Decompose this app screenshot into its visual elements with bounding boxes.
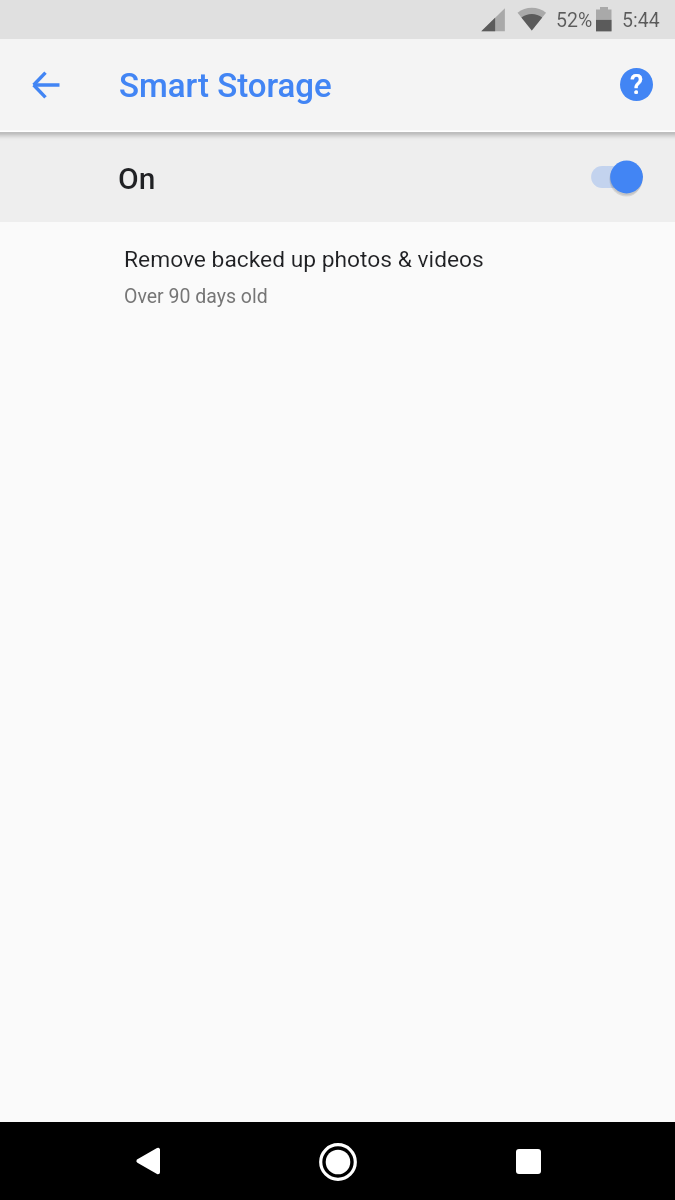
staticText: On — [118, 161, 156, 196]
staticText: Remove backed up photos & videos — [124, 246, 484, 273]
staticText: Over 90 days old — [124, 285, 268, 308]
button[interactable]: Back — [117, 1131, 177, 1191]
staticText: ? — [630, 69, 644, 101]
button[interactable]: Remove backed up photos & videos — [0, 222, 675, 324]
button[interactable]: Home — [308, 1132, 368, 1192]
button[interactable]: Recent apps — [498, 1131, 558, 1191]
button[interactable]: Help — [608, 56, 664, 112]
staticText: Smart Storage — [119, 66, 332, 105]
button[interactable]: Smart Storage on — [583, 155, 643, 199]
staticText: 5:44 — [622, 9, 660, 32]
staticText: 52% — [556, 9, 593, 32]
button[interactable]: On — [0, 142, 675, 222]
button[interactable]: Navigate up — [18, 57, 74, 113]
